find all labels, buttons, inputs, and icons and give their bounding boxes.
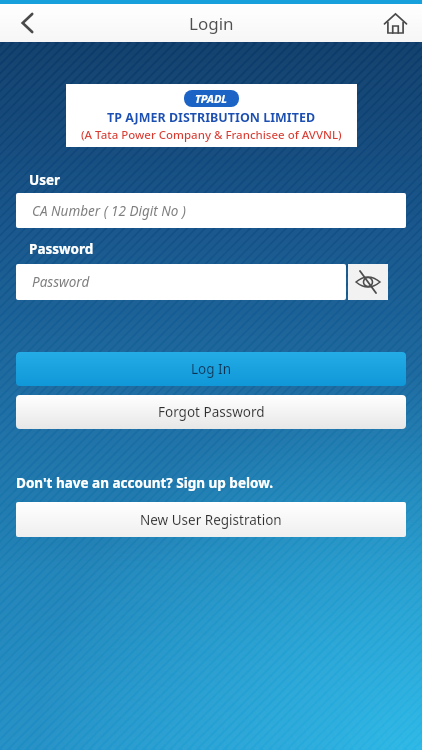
staticText: TPADL xyxy=(195,91,228,106)
staticText: Password xyxy=(29,240,94,258)
button[interactable]: TPADL xyxy=(66,84,357,147)
button[interactable]: Forgot Password xyxy=(16,395,406,429)
staticText: Forgot Password xyxy=(158,403,265,421)
button[interactable]: CA Number ( 12 Digit No ) xyxy=(16,193,406,228)
staticText: Don't have an account? Sign up below. xyxy=(16,474,273,492)
staticText: TP AJMER DISTRIBUTION LIMITED xyxy=(107,109,316,126)
button[interactable]: Password xyxy=(16,264,346,300)
button[interactable]: Log In xyxy=(16,352,406,386)
staticText: Password xyxy=(32,273,90,291)
staticText: CA Number ( 12 Digit No ) xyxy=(32,202,186,220)
button[interactable] xyxy=(348,264,388,300)
staticText: (A Tata Power Company & Franchisee of AV… xyxy=(81,127,342,143)
button[interactable]: New User Registration xyxy=(16,502,406,537)
staticText: New User Registration xyxy=(140,511,282,529)
staticText: Log In xyxy=(191,360,231,378)
button[interactable] xyxy=(14,9,42,37)
staticText: User xyxy=(29,171,61,189)
button[interactable] xyxy=(380,8,410,38)
staticText: Login xyxy=(189,12,234,35)
